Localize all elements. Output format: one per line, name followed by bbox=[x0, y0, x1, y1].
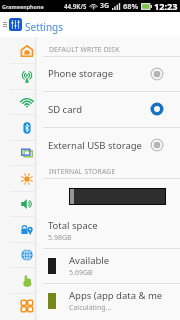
staticText: Available bbox=[69, 254, 110, 267]
staticText: DEFAULT WRITE DISK bbox=[49, 45, 120, 54]
button[interactable]: Home bbox=[0, 38, 35, 64]
staticText: INTERNAL STORAGE bbox=[49, 167, 116, 176]
button[interactable]: Total space bbox=[35, 213, 180, 249]
staticText: 68% bbox=[123, 1, 139, 11]
staticText: 12:23 bbox=[154, 0, 178, 12]
staticText: External USB storage bbox=[48, 139, 142, 152]
staticText: Settings bbox=[25, 20, 64, 34]
staticText: Calculating... bbox=[69, 303, 112, 313]
staticText: 5.98GB bbox=[48, 233, 72, 243]
button[interactable]: Accessibility bbox=[0, 268, 35, 294]
button[interactable]: Security and location bbox=[0, 217, 35, 243]
staticText: Grameenphone bbox=[2, 3, 44, 10]
staticText: SD card bbox=[48, 103, 83, 116]
button[interactable]: Apps bbox=[0, 293, 35, 319]
button[interactable]: Apps (app data & me bbox=[35, 283, 180, 318]
button[interactable]: Language bbox=[0, 242, 35, 268]
button[interactable]: Phone storage bbox=[35, 56, 180, 91]
staticText: 3G bbox=[100, 1, 110, 11]
button[interactable]: Sound bbox=[0, 191, 35, 217]
staticText: 44.9K/S bbox=[64, 2, 87, 10]
button[interactable]: External USB storage bbox=[35, 127, 180, 163]
button[interactable]: SD card bbox=[35, 91, 180, 127]
staticText: Total space bbox=[48, 219, 98, 232]
button[interactable]: Available bbox=[35, 248, 180, 283]
button[interactable]: Mobile network bbox=[0, 64, 35, 90]
button[interactable]: Bluetooth bbox=[0, 115, 35, 141]
button[interactable]: Brightness bbox=[0, 166, 35, 192]
button[interactable]: Display bbox=[0, 140, 35, 166]
button[interactable]: Settings icon bbox=[9, 18, 22, 31]
button[interactable]: Navigation drawer bbox=[1, 12, 8, 37]
staticText: Phone storage bbox=[48, 67, 114, 80]
staticText: 5.69GB bbox=[69, 268, 93, 278]
button[interactable]: Wi-Fi bbox=[0, 89, 35, 115]
staticText: Apps (app data & me bbox=[69, 289, 163, 302]
